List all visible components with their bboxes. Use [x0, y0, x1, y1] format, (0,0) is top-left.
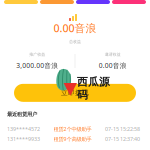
staticText: 立即提现: [61, 89, 89, 97]
staticText: 3,000.00音浪: [16, 61, 58, 70]
staticText: 租赁9个高级助手: [53, 135, 91, 143]
staticText: 邀请收益: [105, 52, 121, 57]
button[interactable]: 立即提现: [14, 84, 136, 102]
staticText: 推广收益: [29, 52, 45, 57]
staticText: 西瓜源码: [77, 75, 110, 102]
staticText: 最近租赁用户: [7, 111, 37, 117]
staticText: 131****9933: [7, 135, 40, 143]
button[interactable]: 131****9933: [0, 135, 150, 143]
staticText: 总收益: [69, 39, 81, 44]
staticText: 0.00音浪: [99, 61, 127, 70]
button[interactable]: 139****4572: [0, 125, 150, 132]
staticText: 07-15 12:37:40: [105, 135, 140, 143]
staticText: 139****4572: [7, 125, 40, 132]
staticText: 0.00音浪: [53, 21, 96, 35]
staticText: 租赁2个中级助手: [53, 125, 91, 132]
staticText: 07-15 15:22:58: [105, 125, 140, 132]
